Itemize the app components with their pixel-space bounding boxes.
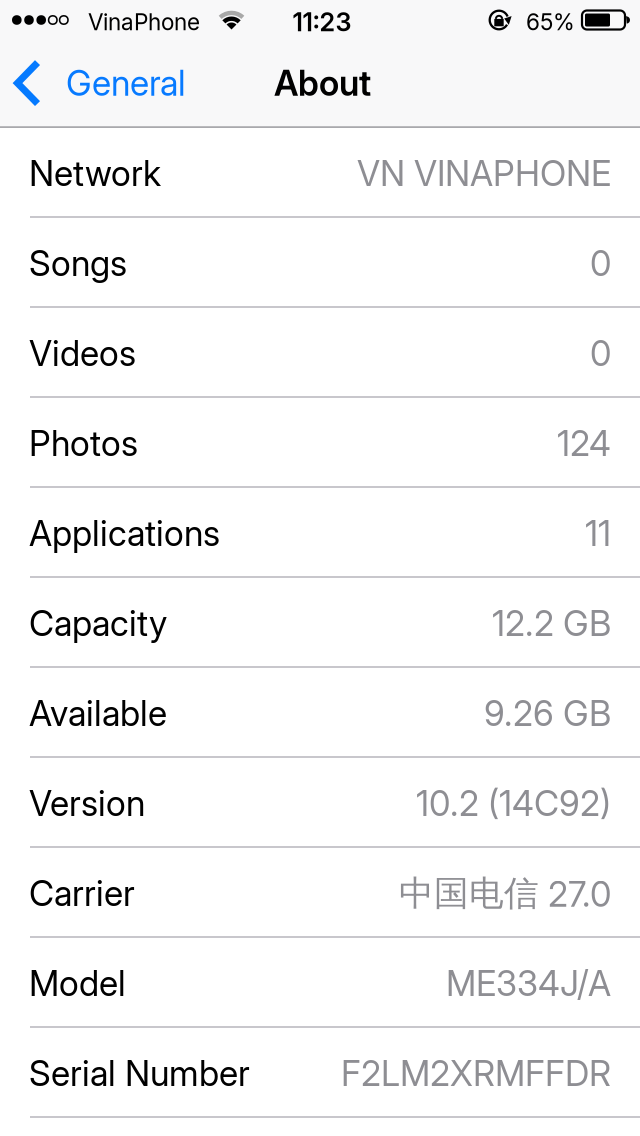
button[interactable]: Available: [0, 668, 640, 758]
staticText: 65%: [526, 9, 575, 35]
staticText: Available: [29, 693, 167, 734]
staticText: 9.26 GB: [484, 693, 611, 734]
staticText: Network: [29, 153, 161, 194]
staticText: 11:23: [292, 7, 351, 37]
staticText: 11: [585, 513, 611, 554]
button[interactable]: Back to General: [0, 59, 186, 107]
button[interactable]: Songs: [0, 218, 640, 308]
button[interactable]: Capacity: [0, 578, 640, 668]
staticText: VinaPhone: [88, 9, 200, 35]
staticText: General: [66, 63, 186, 104]
staticText: 12.2 GB: [492, 603, 611, 644]
staticText: Photos: [29, 423, 138, 464]
button[interactable]: Serial Number: [0, 1028, 640, 1118]
button[interactable]: Carrier: [0, 848, 640, 938]
button[interactable]: Network: [0, 128, 640, 218]
staticText: F2LM2XRMFFDR: [341, 1053, 611, 1094]
staticText: Videos: [29, 333, 136, 374]
staticText: Capacity: [29, 603, 167, 644]
staticText: 0: [590, 333, 611, 374]
staticText: Carrier: [29, 873, 135, 914]
staticText: 中国电信 27.0: [399, 872, 611, 915]
staticText: 0: [590, 243, 611, 284]
staticText: Songs: [29, 243, 127, 284]
staticText: ME334J/A: [446, 963, 611, 1004]
button[interactable]: Photos: [0, 398, 640, 488]
button[interactable]: Model: [0, 938, 640, 1028]
staticText: Serial Number: [29, 1053, 250, 1094]
staticText: Version: [29, 783, 145, 824]
staticText: Applications: [29, 513, 220, 554]
button[interactable]: Applications: [0, 488, 640, 578]
button[interactable]: Videos: [0, 308, 640, 398]
staticText: 124: [557, 423, 611, 464]
staticText: 10.2 (14C92): [416, 783, 611, 824]
staticText: Model: [29, 963, 126, 1004]
staticText: VN VINAPHONE: [357, 153, 611, 194]
staticText: About: [274, 63, 371, 104]
button[interactable]: Version: [0, 758, 640, 848]
